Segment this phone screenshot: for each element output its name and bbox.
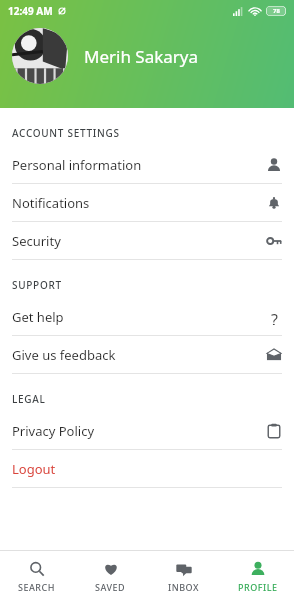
staticText: PROFILE (238, 581, 278, 593)
button[interactable]: Logout (0, 450, 294, 487)
staticText: Notifications (12, 194, 90, 212)
staticText: Merih Sakarya (84, 45, 199, 68)
button[interactable]: Privacy Policy (0, 412, 294, 449)
staticText: LEGAL (12, 392, 46, 406)
staticText: 12:49 AM (8, 4, 53, 18)
staticText: SUPPORT (12, 278, 62, 292)
button[interactable]: Security (0, 222, 294, 259)
staticText: SAVED (95, 581, 126, 593)
button[interactable]: SAVED (74, 551, 147, 603)
staticText: Give us feedback (12, 346, 116, 364)
button[interactable]: SEARCH (0, 551, 73, 603)
staticText: Logout (12, 460, 56, 478)
staticText: ACCOUNT SETTINGS (12, 126, 120, 140)
button[interactable]: Give us feedback (0, 336, 294, 373)
staticText: ? (271, 309, 278, 325)
button[interactable]: INBOX (147, 551, 220, 603)
button[interactable]: PROFILE (221, 551, 294, 603)
button[interactable]: Get help (0, 298, 294, 335)
staticText: INBOX (168, 581, 199, 593)
button[interactable]: Personal information (0, 146, 294, 183)
staticText: SEARCH (18, 581, 55, 593)
staticText: Privacy Policy (12, 422, 95, 440)
button[interactable]: Notifications (0, 184, 294, 221)
staticText: Security (12, 232, 61, 250)
staticText: 78 (273, 7, 280, 15)
staticText: Personal information (12, 156, 142, 174)
staticText: Get help (12, 308, 64, 326)
